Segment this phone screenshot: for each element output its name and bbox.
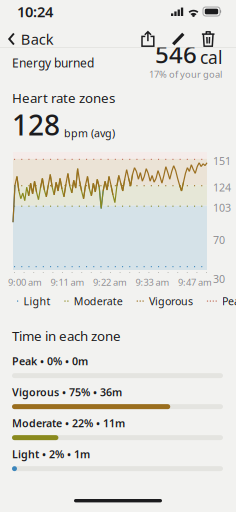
staticText: 9:47 am xyxy=(178,276,212,288)
staticText: 151 xyxy=(213,154,231,168)
staticText: 128 xyxy=(12,106,60,143)
staticText: 9:11 am xyxy=(50,276,84,288)
staticText: cal xyxy=(200,46,222,69)
staticText: 30 xyxy=(213,272,225,286)
staticText: Light • 2% • 1m xyxy=(12,447,90,461)
button[interactable]: Back xyxy=(0,26,62,52)
staticText: 9:33 am xyxy=(135,276,169,288)
staticText: Heart rate zones xyxy=(12,89,115,107)
button[interactable]: Share xyxy=(133,26,163,52)
staticText: 103 xyxy=(213,201,231,215)
staticText: 546 xyxy=(155,38,197,70)
staticText: Moderate xyxy=(74,294,123,308)
staticText: Peak xyxy=(222,294,236,308)
button[interactable]: Edit xyxy=(163,26,193,52)
staticText: Energy burned xyxy=(12,55,94,71)
staticText: 9:22 am xyxy=(93,276,127,288)
staticText: Time in each zone xyxy=(12,327,121,345)
staticText: Vigorous • 75% • 36m xyxy=(12,385,122,399)
staticText: bpm (avg) xyxy=(64,126,115,140)
staticText: Back xyxy=(21,29,54,49)
staticText: 70 xyxy=(213,233,225,247)
staticText: Light xyxy=(23,294,50,308)
button[interactable]: Delete xyxy=(193,26,223,52)
staticText: 10:24 xyxy=(17,2,53,21)
staticText: Peak • 0% • 0m xyxy=(12,354,88,368)
staticText: 124 xyxy=(213,180,231,194)
staticText: 9:00 am xyxy=(8,276,42,288)
staticText: Vigorous xyxy=(149,294,193,308)
staticText: Moderate • 22% • 11m xyxy=(12,416,125,430)
staticText: 17% of your goal xyxy=(149,68,222,80)
